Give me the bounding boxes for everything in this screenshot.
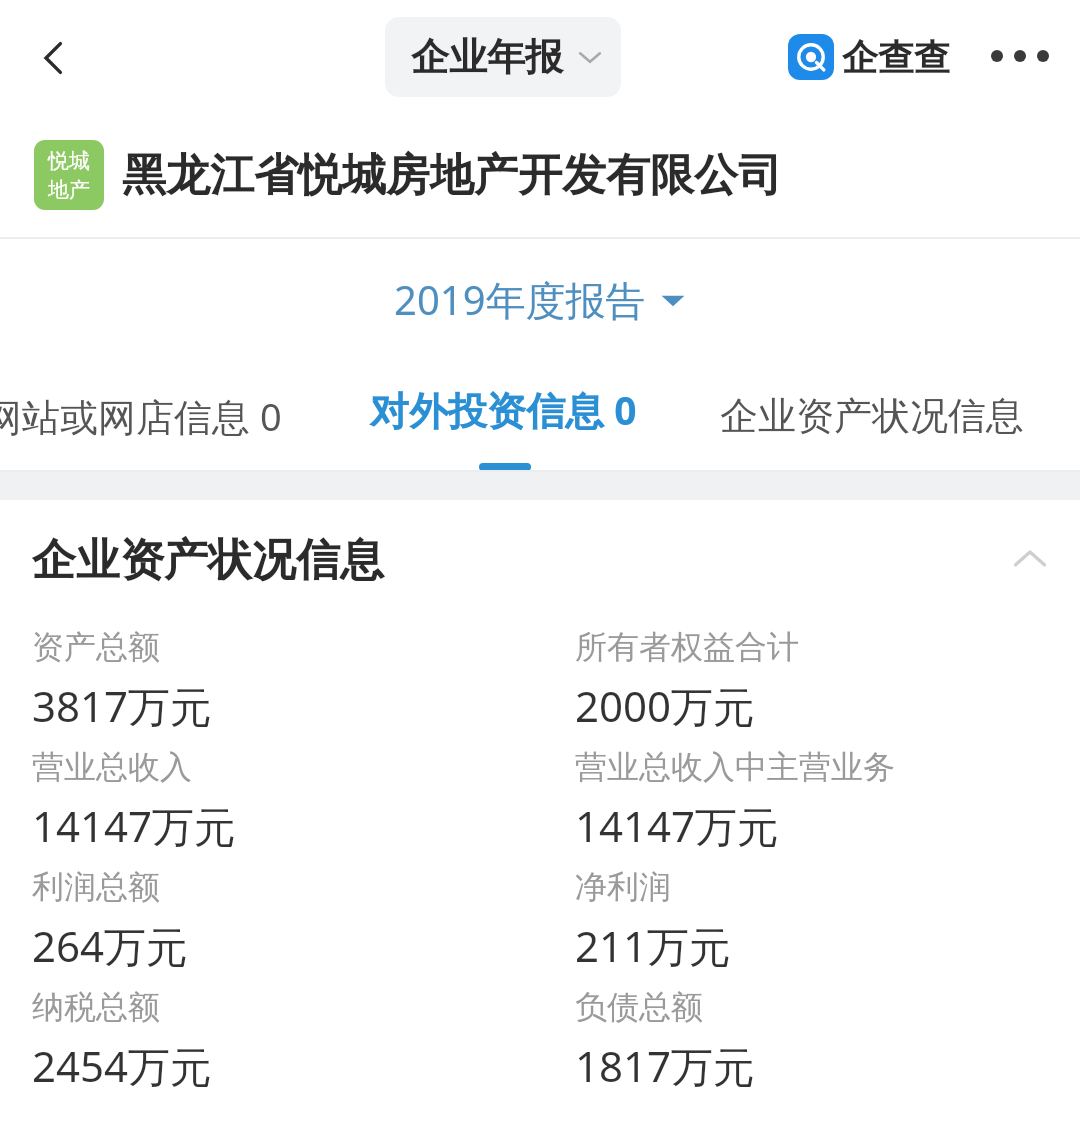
button[interactable]: 企业资产状况信息 bbox=[700, 359, 1070, 472]
staticText: 1817万元 bbox=[575, 1037, 756, 1094]
staticText: 净利润 bbox=[575, 867, 671, 907]
staticText: 营业总收入 bbox=[32, 747, 192, 787]
staticText: 网站或网店信息 0 bbox=[0, 390, 282, 442]
staticText: 资产总额 bbox=[32, 627, 160, 667]
staticText: 黑龙江省悦城房地产开发有限公司 bbox=[122, 148, 782, 203]
staticText: 悦城 bbox=[48, 148, 90, 174]
button[interactable]: 企业资产状况信息 bbox=[0, 500, 1080, 620]
button[interactable]: 营业总收入 bbox=[0, 740, 1080, 860]
button[interactable]: 2019年度报告 bbox=[374, 260, 706, 339]
staticText: 3817万元 bbox=[32, 677, 213, 734]
staticText: 企业年报 bbox=[411, 33, 563, 81]
staticText: 纳税总额 bbox=[32, 987, 160, 1027]
button[interactable]: 纳税总额 bbox=[0, 980, 1080, 1100]
button[interactable]: 网站或网店信息 0 bbox=[0, 359, 294, 472]
staticText: 企业资产状况信息 bbox=[32, 533, 384, 588]
staticText: 2454万元 bbox=[32, 1037, 213, 1094]
staticText: 2019年度报告 bbox=[394, 272, 646, 327]
staticText: 264万元 bbox=[32, 917, 189, 974]
staticText: 营业总收入中主营业务 bbox=[575, 747, 895, 787]
button[interactable]: 资产总额 bbox=[0, 620, 1080, 740]
button[interactable]: 利润总额 bbox=[0, 860, 1080, 980]
button[interactable]: 对外投资信息 0 bbox=[352, 359, 662, 472]
staticText: 14147万元 bbox=[32, 797, 237, 854]
other: Collapse section bbox=[1002, 532, 1058, 588]
staticText: 211万元 bbox=[575, 917, 732, 974]
button[interactable]: More options bbox=[975, 25, 1065, 87]
staticText: 企查查 bbox=[842, 35, 950, 80]
button[interactable]: 悦城 bbox=[0, 113, 1080, 237]
button[interactable]: Back bbox=[18, 22, 90, 94]
staticText: 利润总额 bbox=[32, 867, 160, 907]
staticText: 地产 bbox=[48, 177, 90, 203]
staticText: 所有者权益合计 bbox=[575, 627, 799, 667]
button[interactable]: 企业年报 bbox=[385, 17, 621, 97]
staticText: 2000万元 bbox=[575, 677, 756, 734]
staticText: 企业资产状况信息 bbox=[720, 392, 1024, 440]
staticText: 对外投资信息 0 bbox=[370, 383, 637, 436]
staticText: 14147万元 bbox=[575, 797, 780, 854]
staticText: 负债总额 bbox=[575, 987, 703, 1027]
button[interactable]: 企查查 bbox=[788, 28, 950, 86]
